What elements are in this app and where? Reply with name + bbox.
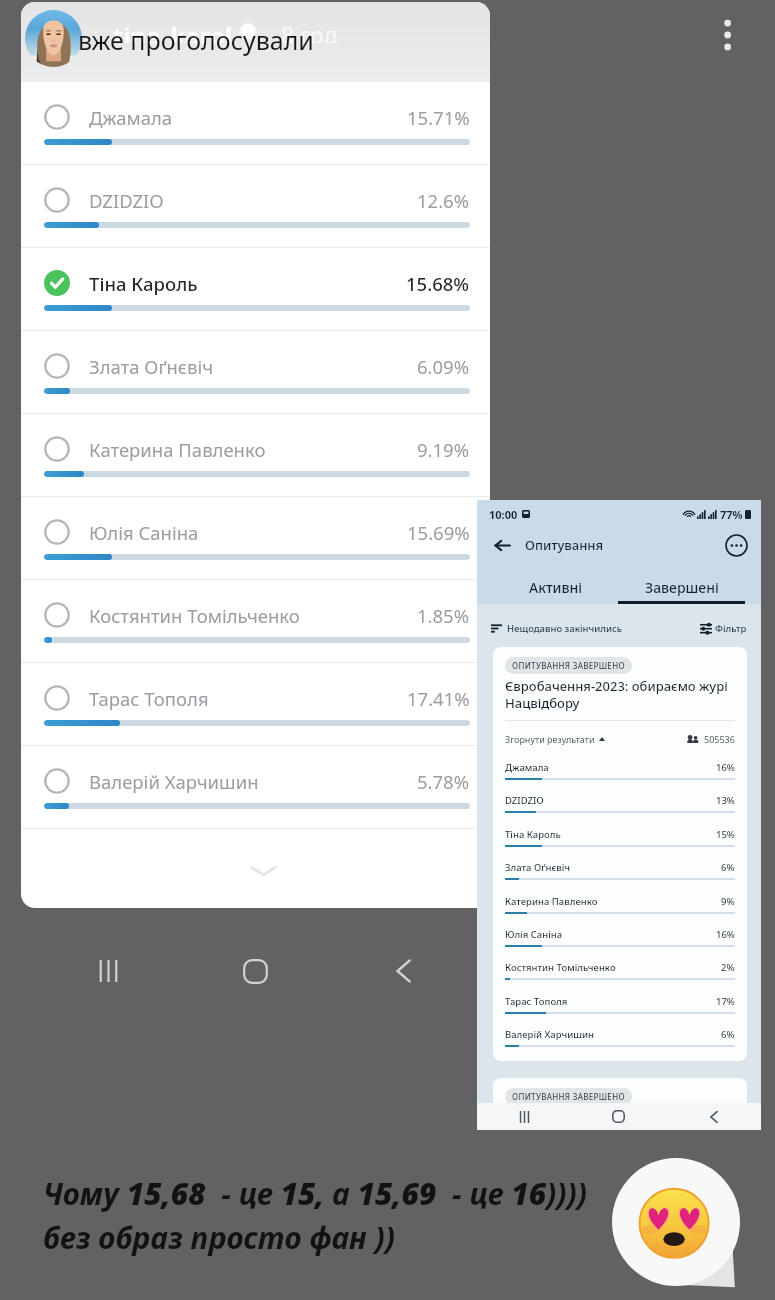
staticText: 16%: [716, 928, 735, 941]
button[interactable]: Джамала: [21, 82, 490, 164]
staticText: DZIDZIO: [89, 188, 164, 213]
staticText: Євробачення-2023: обираємо журі Нацвідбо…: [505, 677, 735, 712]
staticText: Завершені: [645, 578, 719, 597]
button[interactable]: ОПИТУВАННЯ ЗАВЕРШЕНО: [493, 647, 747, 1061]
staticText: Катерина Павленко: [89, 437, 266, 462]
staticText: 9.19%: [417, 437, 470, 462]
button[interactable]: Злата Оґнєвіч: [21, 331, 490, 413]
button[interactable]: More options: [724, 533, 749, 558]
staticText: Згорнути результати: [505, 733, 595, 745]
button[interactable]: Home: [238, 954, 272, 988]
button[interactable]: Юлія Саніна: [21, 497, 490, 579]
staticText: Нещодавно закінчились: [507, 622, 623, 635]
staticText: Активні: [529, 578, 583, 597]
staticText: Чому 15,68 - це 15, а 15,69 - це 16)))): [43, 1173, 587, 1214]
staticText: Джамала: [505, 761, 549, 774]
button[interactable]: Тіна Кароль: [21, 248, 490, 330]
staticText: 17%: [716, 995, 735, 1008]
staticText: 6.09%: [417, 354, 470, 379]
staticText: Юлія Саніна: [89, 520, 199, 545]
staticText: Опитування: [525, 536, 604, 554]
button[interactable]: Back: [386, 954, 420, 988]
staticText: 13%: [716, 794, 735, 807]
staticText: 12.6%: [417, 188, 470, 213]
staticText: Катерина Павленко: [505, 895, 598, 908]
staticText: Костянтин Томільченко: [505, 961, 616, 974]
button[interactable]: Катерина Павленко: [21, 414, 490, 496]
button[interactable]: Back: [490, 533, 514, 557]
staticText: Валерій Харчишин: [89, 769, 259, 794]
staticText: 15.69%: [407, 520, 470, 545]
button[interactable]: More options: [710, 8, 746, 62]
button[interactable]: Активні: [493, 572, 619, 602]
button[interactable]: Recents: [91, 954, 125, 988]
staticText: tina_karol: [113, 19, 233, 43]
staticText: 10:00: [489, 507, 518, 522]
button[interactable]: Recents: [477, 1103, 571, 1130]
staticText: без образ просто фан )): [43, 1217, 395, 1258]
staticText: 8 год: [281, 19, 338, 43]
staticText: Валерій Харчишин: [505, 1028, 594, 1041]
staticText: ОПИТУВАННЯ ЗАВЕРШЕНО: [512, 660, 625, 671]
staticText: 15%: [716, 828, 735, 841]
staticText: Костянтин Томільченко: [89, 603, 300, 628]
staticText: 15.68%: [406, 271, 470, 296]
staticText: 6%: [721, 861, 735, 874]
staticText: ОПИТУВАННЯ ЗАВЕРШЕНО: [512, 1091, 625, 1102]
staticText: 16%: [716, 761, 735, 774]
staticText: 5.78%: [417, 769, 470, 794]
button[interactable]: Валерій Харчишин: [21, 746, 490, 828]
button[interactable]: ОПИТУВАННЯ ЗАВЕРШЕНО: [493, 1078, 747, 1130]
button[interactable]: DZIDZIO: [21, 165, 490, 247]
staticText: 15.71%: [407, 105, 470, 130]
staticText: 9%: [721, 895, 735, 908]
staticText: Тарас Тополя: [505, 995, 568, 1008]
staticText: Джамала: [89, 105, 173, 130]
staticText: Злата Оґнєвіч: [505, 861, 571, 874]
staticText: Тарас Тополя: [89, 686, 209, 711]
staticText: Тіна Кароль: [505, 828, 561, 841]
button[interactable]: Back: [666, 1103, 761, 1130]
staticText: DZIDZIO: [505, 794, 544, 807]
staticText: вже проголосували: [78, 23, 314, 57]
staticText: 1.85%: [417, 603, 470, 628]
staticText: Злата Оґнєвіч: [89, 354, 214, 379]
button[interactable]: Завершені: [618, 572, 745, 602]
staticText: Фільтр: [715, 622, 747, 635]
staticText: 77%: [720, 507, 743, 522]
staticText: 2%: [721, 961, 735, 974]
staticText: 505536: [704, 733, 735, 745]
button[interactable]: Home: [571, 1103, 666, 1130]
button[interactable]: Тарас Тополя: [21, 663, 490, 745]
button[interactable]: Profile photo: [25, 10, 82, 67]
staticText: Тіна Кароль: [89, 271, 198, 296]
staticText: Юлія Саніна: [505, 928, 563, 941]
staticText: 6%: [721, 1028, 735, 1041]
button[interactable]: Heart eyes reaction: [612, 1158, 744, 1290]
button[interactable]: Костянтин Томільченко: [21, 580, 490, 662]
staticText: 17.41%: [407, 686, 470, 711]
